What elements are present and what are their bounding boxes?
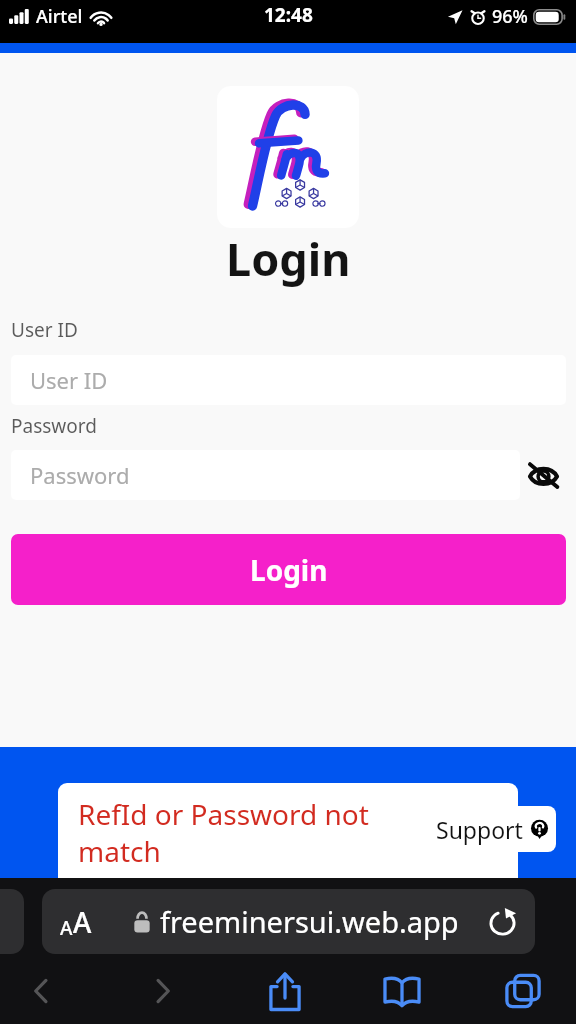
- button[interactable]: Share: [253, 959, 317, 1023]
- staticText: User ID: [11, 317, 78, 343]
- button[interactable]: Support: [422, 806, 556, 852]
- staticText: 12:48: [264, 2, 313, 28]
- staticText: Password: [30, 460, 130, 490]
- staticText: Password: [11, 413, 97, 439]
- staticText: Login: [250, 551, 328, 589]
- button[interactable]: Bookmarks: [370, 959, 434, 1023]
- staticText: Support: [436, 814, 523, 845]
- staticText: Airtel: [36, 4, 83, 29]
- button[interactable]: Reload: [483, 903, 521, 941]
- staticText: Login: [226, 228, 351, 289]
- staticText: RefId or Password not match: [78, 795, 378, 870]
- staticText: A: [73, 903, 92, 941]
- button[interactable]: Forward: [131, 959, 195, 1023]
- button[interactable]: User ID: [11, 355, 566, 405]
- staticText: 96%: [492, 4, 528, 29]
- staticText: freeminersui.web.app: [160, 902, 459, 941]
- button[interactable]: Show password: [524, 456, 562, 494]
- button[interactable]: Tabs: [491, 959, 555, 1023]
- staticText: User ID: [30, 365, 108, 395]
- staticText: A: [60, 915, 73, 941]
- button[interactable]: Back: [9, 959, 73, 1023]
- button[interactable]: Login: [11, 534, 566, 605]
- button[interactable]: A: [42, 889, 535, 954]
- button[interactable]: Password: [11, 450, 520, 500]
